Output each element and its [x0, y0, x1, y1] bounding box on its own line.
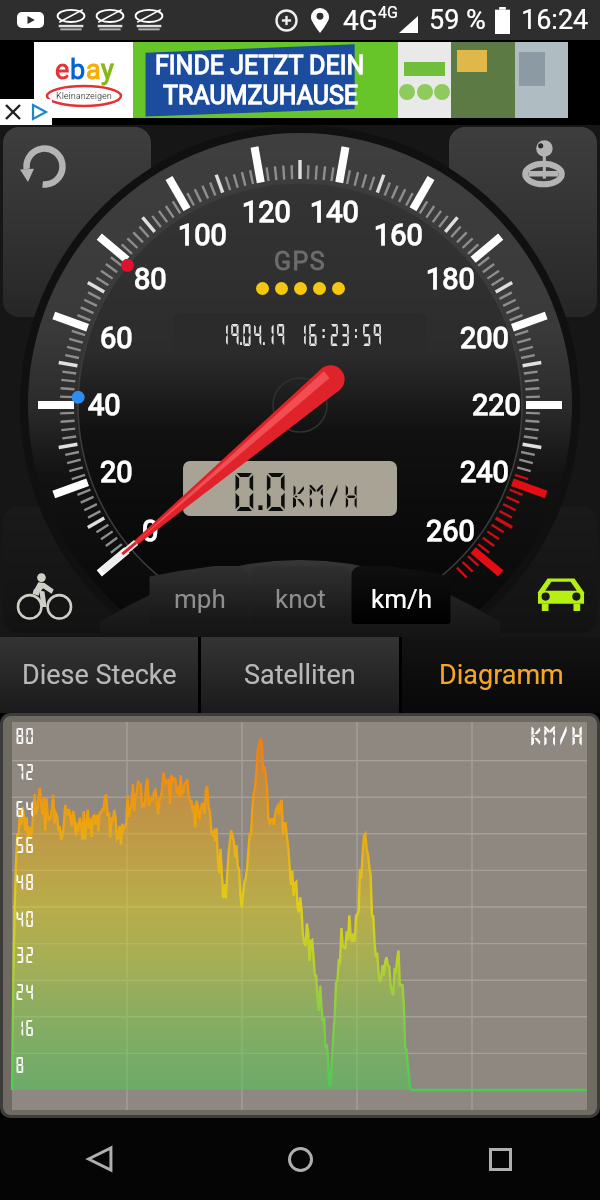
staticText: 16:24 [521, 4, 589, 36]
staticText: 200 [460, 321, 509, 355]
staticText: 56 [15, 834, 35, 854]
staticText: e [55, 54, 70, 86]
button[interactable]: Bicycle mode [0, 547, 110, 637]
staticText: 100 [178, 218, 227, 252]
staticText: Kleinanzeigen [56, 91, 112, 102]
staticText: 19.04.19 16:23:59 [219, 321, 381, 348]
staticText: 72 [15, 761, 35, 781]
staticText: 64 [15, 798, 35, 818]
button[interactable]: Recent apps [400, 1118, 600, 1200]
staticText: Diese Stecke [22, 659, 177, 691]
button[interactable]: Reset trip [0, 125, 110, 225]
staticText: 60 [100, 321, 133, 355]
staticText: 40 [15, 908, 35, 928]
staticText: 59 % [429, 4, 486, 36]
staticText: 260 [426, 514, 475, 548]
button[interactable]: Satelliten [201, 637, 399, 713]
staticText: mph [174, 584, 226, 614]
staticText: GPS [274, 247, 327, 276]
staticText: 48 [15, 871, 35, 891]
staticText: 8 [15, 1054, 25, 1074]
staticText: 20 [100, 455, 133, 489]
staticText: knot [275, 584, 326, 614]
staticText: 32 [15, 944, 35, 964]
button[interactable]: Car mode [490, 547, 600, 637]
staticText: 220 [472, 388, 521, 422]
staticText: 140 [310, 195, 359, 229]
staticText: a [86, 54, 101, 86]
staticText: 80 [134, 262, 167, 296]
staticText: FINDE JETZT DEIN [155, 51, 365, 80]
button[interactable]: knot [250, 566, 351, 624]
button[interactable]: Back [0, 1118, 200, 1200]
staticText: 180 [426, 262, 475, 296]
staticText: TRAUMZUHAUSE [163, 81, 359, 110]
staticText: 0 [142, 514, 159, 548]
staticText: 4G [343, 4, 378, 37]
staticText: y [101, 54, 114, 86]
staticText: 160 [374, 218, 423, 252]
staticText: km/h [371, 584, 433, 614]
staticText: 4G [378, 3, 398, 22]
button[interactable]: Home [200, 1118, 400, 1200]
staticText: b [70, 54, 86, 86]
staticText: 16 [15, 1017, 35, 1037]
button[interactable]: Vehicle settings [490, 125, 600, 225]
staticText: 0.0 [230, 467, 290, 515]
staticText: Satelliten [244, 659, 356, 691]
staticText: KM/H [529, 723, 585, 749]
staticText: 80 [15, 725, 35, 745]
staticText: 240 [460, 455, 509, 489]
button[interactable]: mph [149, 566, 250, 624]
button[interactable]: Diese Stecke [0, 637, 198, 713]
button[interactable]: Diagramm [402, 637, 600, 713]
button[interactable]: km/h [351, 566, 452, 624]
staticText: 40 [88, 388, 121, 422]
staticText: 24 [15, 981, 35, 1001]
staticText: 120 [242, 195, 291, 229]
staticText: Diagramm [439, 659, 564, 691]
staticText: KM/H [290, 480, 360, 512]
